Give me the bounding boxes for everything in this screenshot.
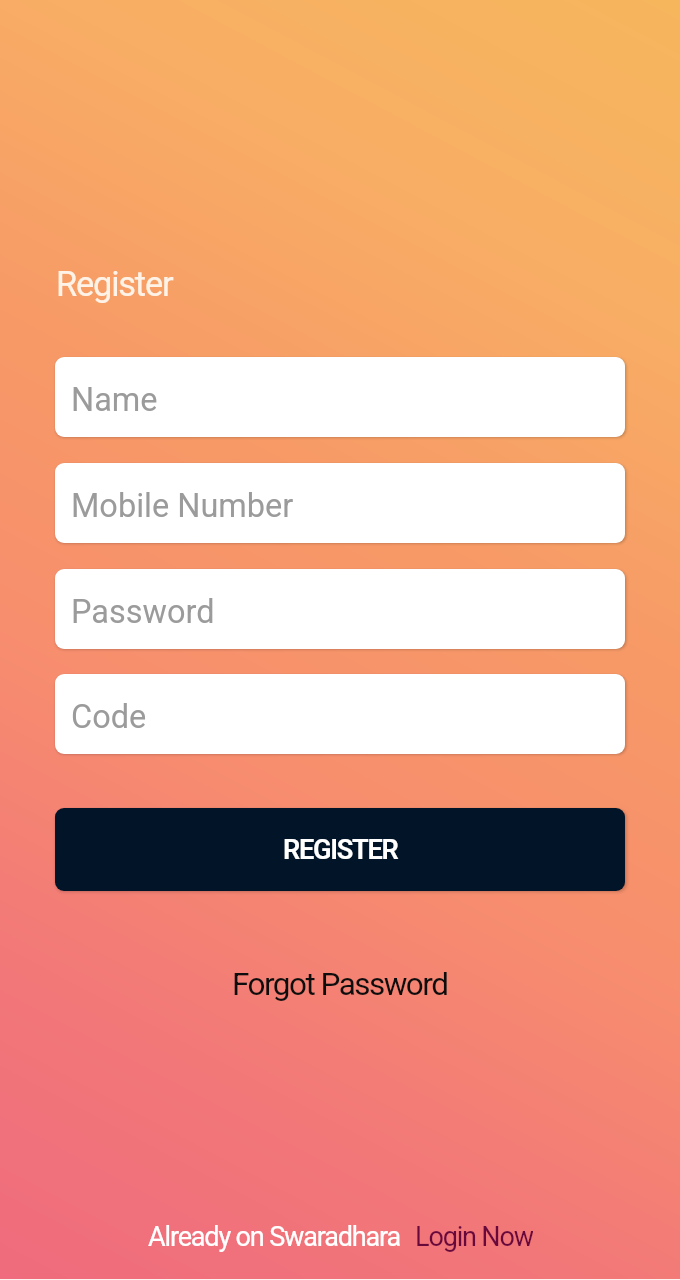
staticText: Forgot Password <box>232 966 448 1003</box>
button[interactable]: Mobile Number <box>55 463 625 543</box>
staticText: Already on Swaradhara <box>148 1221 401 1253</box>
button[interactable]: Password <box>55 569 625 649</box>
staticText: REGISTER <box>283 834 398 866</box>
staticText: Mobile Number <box>71 487 294 525</box>
staticText: Password <box>71 593 215 631</box>
staticText: Code <box>71 698 147 736</box>
button[interactable]: REGISTER <box>55 808 625 891</box>
staticText: Register <box>56 264 173 304</box>
button[interactable]: Name <box>55 357 625 437</box>
staticText: Login Now <box>415 1221 533 1253</box>
staticText: Name <box>71 381 158 419</box>
button[interactable]: Forgot Password <box>232 966 448 1003</box>
button[interactable]: Code <box>55 674 625 754</box>
button[interactable]: Login Now <box>415 1221 533 1253</box>
